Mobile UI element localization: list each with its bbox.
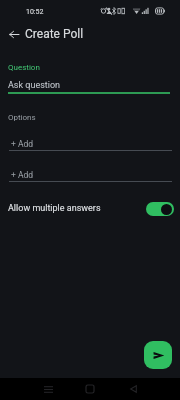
button[interactable]: Recent apps	[37, 378, 59, 400]
button[interactable]: Allow multiple answers	[8, 201, 174, 216]
staticText: + Add	[11, 139, 34, 149]
button[interactable]: Home	[79, 378, 101, 400]
staticText: Allow multiple answers	[8, 203, 101, 214]
button[interactable]: + Add	[8, 163, 171, 181]
staticText: 10:52	[26, 8, 44, 16]
button[interactable]: Back	[3, 23, 25, 45]
button[interactable]: + Add	[8, 132, 171, 150]
staticText: Options	[8, 113, 36, 122]
staticText: + Add	[11, 170, 34, 180]
button[interactable]: Back	[122, 378, 144, 400]
button[interactable]: Send poll	[144, 341, 172, 369]
staticText: Create Poll	[25, 27, 84, 41]
staticText: Ask question	[8, 80, 61, 91]
staticText: Question	[8, 63, 40, 72]
